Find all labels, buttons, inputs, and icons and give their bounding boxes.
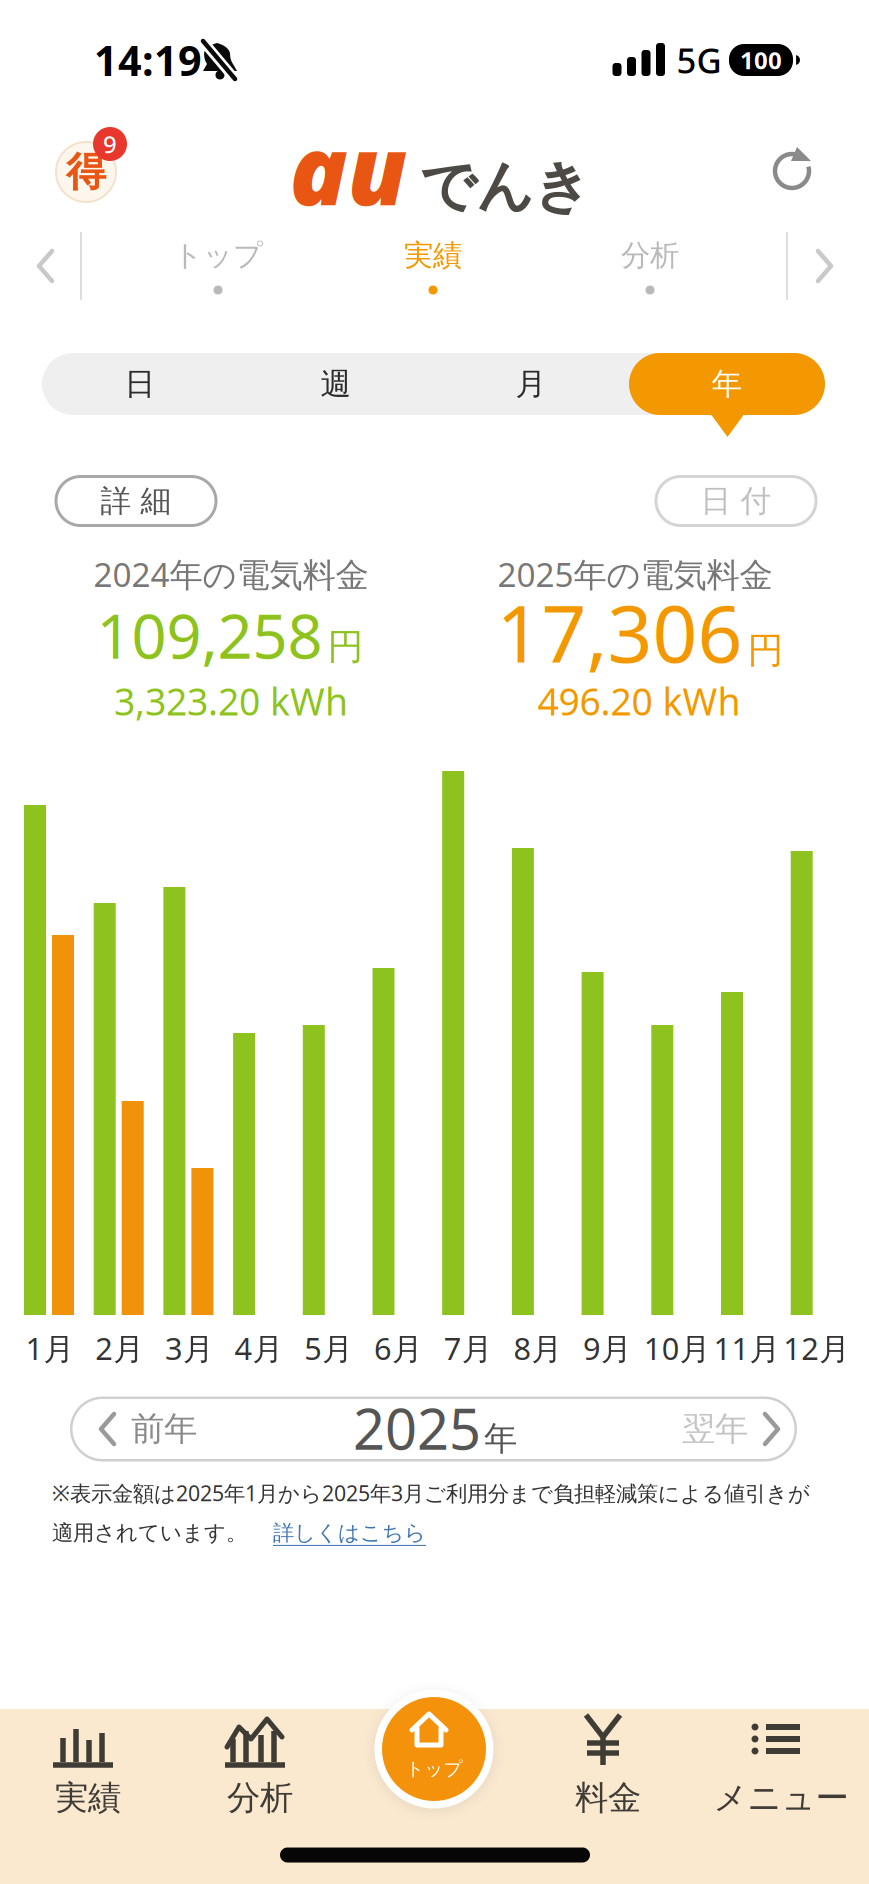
button[interactable]: 詳しくはこちら — [273, 1520, 426, 1546]
staticText: 詳 細 — [100, 482, 171, 520]
button[interactable]: 分析 — [175, 1712, 345, 1822]
staticText: 円 — [747, 628, 783, 673]
button[interactable]: 年 — [629, 353, 825, 415]
button[interactable]: 前年 — [71, 1397, 221, 1460]
staticText: でんき — [419, 152, 590, 221]
button[interactable]: 分析 — [585, 233, 715, 299]
staticText: ※表示金額は2025年1月から2025年3月ご利用分まで負担軽減策による値引きが — [52, 1479, 810, 1507]
staticText: 17,306 — [496, 580, 742, 684]
staticText: 100 — [740, 44, 782, 76]
staticText: 年 — [711, 365, 742, 403]
staticText: 適用されています。 — [52, 1520, 247, 1546]
staticText: 5G — [676, 37, 721, 83]
staticText: 2025年の電気料金 — [497, 552, 772, 596]
button[interactable] — [766, 145, 818, 197]
staticText: 3,323.20 kWh — [114, 676, 348, 726]
button[interactable] — [33, 246, 59, 286]
button[interactable]: 週 — [241, 353, 431, 415]
staticText: トップ — [173, 237, 263, 273]
staticText: 7月 — [444, 1328, 493, 1368]
staticText: 2024年の電気料金 — [93, 552, 368, 596]
button[interactable] — [811, 246, 837, 286]
staticText: 496.20 kWh — [537, 676, 740, 726]
staticText: 10月 — [644, 1328, 711, 1368]
staticText: 4月 — [235, 1328, 284, 1368]
staticText: 9月 — [583, 1328, 632, 1368]
staticText: 日 — [124, 365, 155, 403]
staticText: 8月 — [513, 1328, 562, 1368]
button[interactable]: メニュー — [696, 1712, 866, 1822]
staticText: 前年 — [131, 1408, 197, 1449]
button[interactable]: トップ — [382, 1697, 486, 1801]
button[interactable]: 翌年 — [658, 1397, 808, 1460]
staticText: 年 — [484, 1418, 517, 1459]
staticText: 得 — [66, 147, 106, 196]
staticText: 2025 — [353, 1391, 481, 1465]
button[interactable]: 料金 — [523, 1712, 693, 1822]
staticText: 11月 — [713, 1328, 780, 1368]
staticText: 分析 — [227, 1777, 293, 1818]
staticText: au — [289, 104, 407, 232]
button[interactable]: トップ — [153, 233, 283, 299]
staticText: メニュー — [713, 1777, 848, 1818]
staticText: 詳しくはこちら — [273, 1520, 426, 1546]
staticText: 日 付 — [700, 482, 771, 520]
button[interactable]: 詳 細 — [54, 475, 217, 527]
staticText: 料金 — [575, 1777, 641, 1818]
staticText: 1月 — [25, 1328, 74, 1368]
staticText: 109,258 — [96, 594, 322, 676]
button[interactable]: 月 — [436, 353, 626, 415]
button[interactable]: 実績 — [3, 1712, 173, 1822]
staticText: 実績 — [55, 1777, 121, 1818]
staticText: 9 — [103, 128, 117, 160]
staticText: 3月 — [165, 1328, 214, 1368]
staticText: 円 — [327, 625, 363, 669]
staticText: 分析 — [621, 237, 679, 273]
button[interactable]: 日 付 — [654, 475, 817, 527]
staticText: 2月 — [95, 1328, 144, 1368]
button[interactable]: 得 — [50, 126, 130, 206]
button[interactable]: 日 — [45, 353, 235, 415]
staticText: 週 — [320, 365, 351, 403]
staticText: 14:19 — [94, 33, 202, 87]
staticText: トップ — [405, 1757, 462, 1780]
staticText: 実績 — [404, 237, 462, 273]
button[interactable]: 実績 — [368, 233, 498, 299]
staticText: 5月 — [304, 1328, 353, 1368]
staticText: 翌年 — [682, 1408, 748, 1449]
staticText: 12月 — [783, 1328, 850, 1368]
staticText: 6月 — [374, 1328, 423, 1368]
staticText: 月 — [515, 365, 546, 403]
